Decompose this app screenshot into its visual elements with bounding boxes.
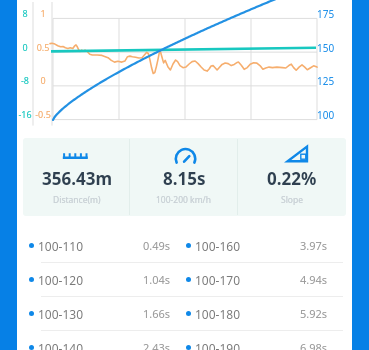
staticText: 100-190	[195, 340, 241, 350]
button[interactable]: 100-190	[186, 331, 328, 350]
staticText: -16	[13, 108, 37, 120]
staticText: 0	[31, 74, 55, 86]
staticText: 0.49s	[143, 238, 171, 253]
staticText: 356.43m	[42, 167, 112, 190]
staticText: 125	[317, 74, 349, 88]
staticText: 8.15s	[163, 167, 206, 190]
button[interactable]: 100-110	[29, 229, 171, 262]
staticText: 6.98s	[300, 340, 328, 350]
staticText: 100	[317, 108, 349, 122]
button[interactable]: 100-130	[29, 297, 171, 330]
other: Distance(m)	[64, 141, 90, 167]
staticText: 100-110	[38, 238, 84, 254]
staticText: 1.04s	[143, 272, 171, 287]
staticText: 100-170	[195, 272, 241, 288]
button[interactable]: 100-200 km/h	[130, 138, 238, 216]
button[interactable]: 100-160	[186, 229, 328, 262]
staticText: Distance(m)	[53, 194, 101, 206]
staticText: 1.66s	[143, 306, 171, 321]
staticText: 4.94s	[300, 272, 328, 287]
button[interactable]: 100-170	[186, 263, 328, 296]
staticText: 3.97s	[300, 238, 328, 253]
staticText: 175	[317, 7, 349, 21]
other: 100-200 km/h	[171, 141, 197, 167]
staticText: 100-180	[195, 306, 241, 322]
staticText: 150	[317, 41, 349, 55]
staticText: 100-160	[195, 238, 241, 254]
staticText: 0.5	[31, 41, 55, 53]
staticText: Slope	[281, 194, 304, 206]
staticText: -8	[13, 74, 37, 86]
staticText: 0	[13, 41, 37, 53]
button[interactable]: 100-140	[29, 331, 171, 350]
other: Slope	[279, 141, 305, 167]
button[interactable]: Slope	[238, 138, 346, 216]
button[interactable]: 100-180	[186, 297, 328, 330]
staticText: 100-120	[38, 272, 84, 288]
staticText: 8	[13, 7, 37, 19]
staticText: 2.43s	[143, 340, 171, 350]
staticText: 5.92s	[300, 306, 328, 321]
staticText: 1	[31, 7, 55, 19]
staticText: 100-200 km/h	[156, 194, 212, 206]
staticText: 100-140	[38, 340, 84, 350]
staticText: -0.5	[31, 108, 55, 120]
staticText: 0.22%	[267, 167, 317, 190]
button[interactable]: Distance(m)	[23, 138, 130, 216]
button[interactable]: 100-120	[29, 263, 171, 296]
staticText: 100-130	[38, 306, 84, 322]
